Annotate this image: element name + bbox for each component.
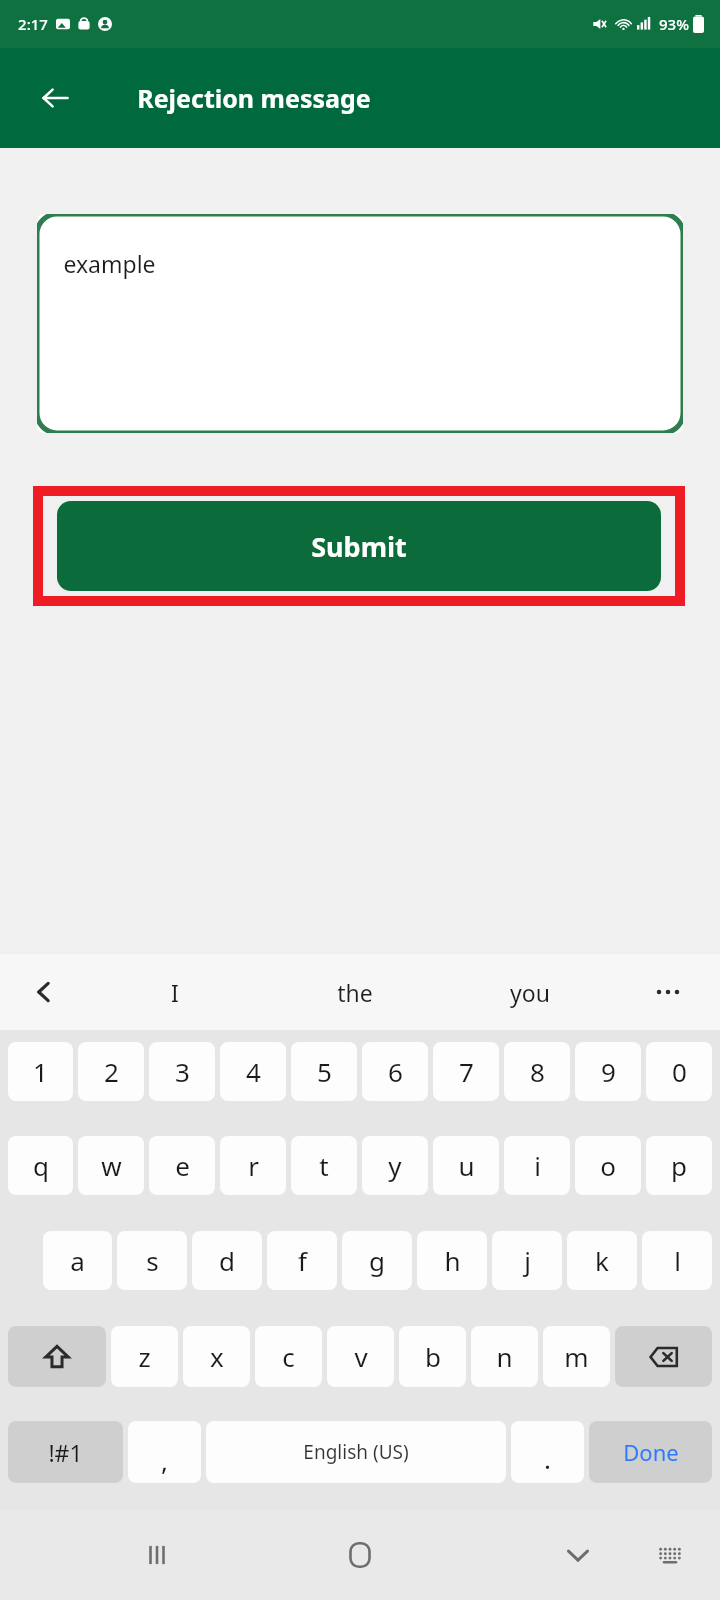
staticText: c	[282, 1339, 295, 1374]
button[interactable]: i	[504, 1136, 570, 1195]
staticText: o	[600, 1148, 616, 1183]
button[interactable]: English (US)	[206, 1421, 506, 1483]
button[interactable]: m	[543, 1326, 610, 1387]
button[interactable]: 6	[362, 1042, 428, 1101]
button[interactable]: y	[362, 1136, 428, 1195]
button[interactable]: Home	[328, 1523, 392, 1587]
button[interactable]: Recent apps	[127, 1525, 187, 1585]
button[interactable]: 0	[646, 1042, 712, 1101]
staticText: t	[319, 1148, 329, 1183]
button[interactable]: More options	[640, 964, 696, 1020]
button[interactable]: p	[646, 1136, 712, 1195]
button[interactable]: s	[117, 1231, 187, 1290]
button[interactable]: 7	[433, 1042, 499, 1101]
button[interactable]: 2	[78, 1042, 144, 1101]
staticText: x	[210, 1339, 224, 1374]
staticText: .	[544, 1441, 551, 1476]
staticText: 7	[459, 1054, 474, 1089]
staticText: l	[674, 1243, 681, 1278]
staticText: 4	[246, 1054, 261, 1089]
staticText: 2:17	[18, 14, 48, 34]
button[interactable]: n	[471, 1326, 538, 1387]
staticText: Rejection message	[137, 81, 371, 115]
staticText: u	[458, 1148, 475, 1183]
staticText: q	[33, 1148, 49, 1183]
button[interactable]: 9	[575, 1042, 641, 1101]
button[interactable]: Back	[20, 63, 90, 133]
staticText: y	[388, 1148, 402, 1183]
staticText: g	[369, 1243, 385, 1278]
button[interactable]: Submit	[57, 501, 661, 591]
button[interactable]: Shift	[8, 1326, 106, 1387]
staticText: 93%	[659, 14, 689, 34]
staticText: 2	[104, 1054, 119, 1089]
button[interactable]: f	[267, 1231, 337, 1290]
button[interactable]: j	[492, 1231, 562, 1290]
staticText: z	[138, 1339, 151, 1374]
staticText: 1	[33, 1054, 48, 1089]
button[interactable]: you	[485, 964, 575, 1020]
staticText: j	[524, 1243, 531, 1278]
button[interactable]: 3	[149, 1042, 215, 1101]
staticText: n	[496, 1339, 513, 1374]
staticText: b	[425, 1339, 441, 1374]
button[interactable]: w	[78, 1136, 144, 1195]
button[interactable]: h	[417, 1231, 487, 1290]
staticText: p	[671, 1148, 687, 1183]
staticText: 8	[530, 1054, 545, 1089]
button[interactable]: Switch keyboard	[642, 1527, 698, 1583]
button[interactable]: c	[255, 1326, 322, 1387]
button[interactable]: x	[183, 1326, 250, 1387]
staticText: r	[248, 1148, 259, 1183]
button[interactable]: o	[575, 1136, 641, 1195]
button[interactable]: u	[433, 1136, 499, 1195]
staticText: a	[70, 1243, 85, 1278]
staticText: I	[171, 977, 179, 1008]
staticText: 3	[175, 1054, 190, 1089]
button[interactable]: ,	[128, 1421, 201, 1483]
button[interactable]: v	[327, 1326, 394, 1387]
button[interactable]: g	[342, 1231, 412, 1290]
button[interactable]: r	[220, 1136, 286, 1195]
staticText: s	[146, 1243, 159, 1278]
staticText: k	[595, 1243, 609, 1278]
button[interactable]: a	[43, 1231, 112, 1290]
button[interactable]: 1	[8, 1042, 73, 1101]
button[interactable]: k	[567, 1231, 637, 1290]
button[interactable]: the	[310, 964, 400, 1020]
button[interactable]: 5	[291, 1042, 357, 1101]
button[interactable]: b	[399, 1326, 466, 1387]
button[interactable]: .	[511, 1421, 584, 1483]
staticText: w	[101, 1148, 122, 1183]
staticText: !#1	[48, 1437, 83, 1468]
button[interactable]: 4	[220, 1042, 286, 1101]
staticText: Submit	[311, 528, 407, 565]
staticText: 9	[601, 1054, 616, 1089]
staticText: Done	[623, 1437, 679, 1467]
staticText: 6	[388, 1054, 403, 1089]
button[interactable]: d	[192, 1231, 262, 1290]
staticText: 0	[672, 1054, 687, 1089]
staticText: ,	[161, 1443, 168, 1478]
button[interactable]: q	[8, 1136, 73, 1195]
button[interactable]: Backspace	[615, 1326, 712, 1387]
button[interactable]: 8	[504, 1042, 570, 1101]
staticText: f	[298, 1243, 307, 1278]
button[interactable]: Done	[589, 1421, 712, 1483]
button[interactable]: Previous suggestions	[16, 964, 72, 1020]
button[interactable]: !#1	[8, 1421, 123, 1483]
staticText: d	[219, 1243, 235, 1278]
staticText: the	[337, 977, 373, 1008]
button[interactable]: t	[291, 1136, 357, 1195]
button[interactable]: example	[37, 214, 683, 433]
button[interactable]: Hide keyboard	[548, 1525, 608, 1585]
button[interactable]: e	[149, 1136, 215, 1195]
staticText: you	[510, 977, 550, 1008]
staticText: e	[175, 1148, 190, 1183]
button[interactable]: z	[111, 1326, 178, 1387]
button[interactable]: I	[150, 964, 200, 1020]
staticText: 5	[317, 1054, 332, 1089]
staticText: h	[444, 1243, 461, 1278]
staticText: i	[534, 1148, 541, 1183]
button[interactable]: l	[642, 1231, 712, 1290]
